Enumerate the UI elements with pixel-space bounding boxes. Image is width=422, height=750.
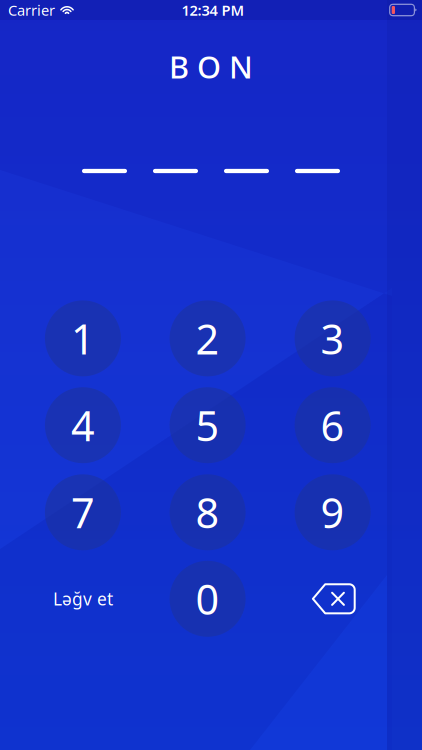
button[interactable]: 5 <box>170 387 246 463</box>
staticText: Ləğv et <box>53 587 113 610</box>
button[interactable]: 2 <box>170 300 246 376</box>
staticText: Carrier <box>8 0 55 20</box>
staticText: 4 <box>71 398 95 453</box>
staticText: 8 <box>196 485 220 540</box>
staticText: 9 <box>321 485 345 540</box>
staticText: 1 <box>71 311 95 366</box>
button[interactable]: 0 <box>170 561 246 637</box>
button[interactable]: 4 <box>45 387 121 463</box>
button[interactable]: 8 <box>170 474 246 550</box>
staticText: 0 <box>196 571 220 626</box>
button[interactable]: Ləğv et <box>45 561 121 637</box>
staticText: 2 <box>196 311 220 366</box>
button[interactable]: 1 <box>45 300 121 376</box>
staticText: 5 <box>196 398 220 453</box>
staticText: 7 <box>71 485 95 540</box>
staticText: 12:34 PM <box>181 0 244 20</box>
staticText: B O N <box>169 46 253 87</box>
button[interactable]: 7 <box>45 474 121 550</box>
button[interactable]: 6 <box>295 387 371 463</box>
staticText: 3 <box>321 311 345 366</box>
button[interactable]: 3 <box>295 300 371 376</box>
button[interactable]: 9 <box>295 474 371 550</box>
button[interactable]: Delete <box>296 561 372 637</box>
staticText: 6 <box>321 398 345 453</box>
